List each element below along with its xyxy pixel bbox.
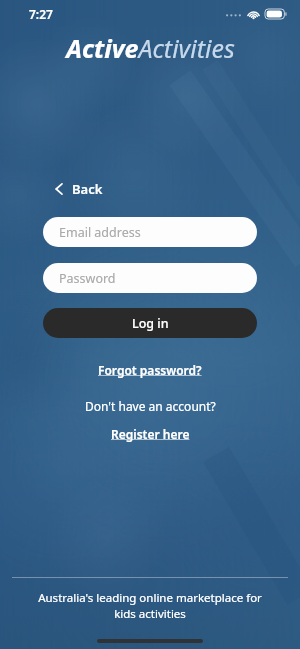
staticText: Back xyxy=(72,180,103,198)
button[interactable]: Password xyxy=(43,263,257,293)
button[interactable]: Forgot password? xyxy=(92,359,208,381)
button[interactable]: Log in xyxy=(43,308,257,338)
other: Battery xyxy=(265,9,287,19)
staticText: Password xyxy=(59,270,116,287)
button[interactable]: Email address xyxy=(43,217,257,247)
staticText: Australia's leading online marketplace f… xyxy=(26,590,274,621)
staticText: Email address xyxy=(59,224,141,241)
staticText: Don't have an account? xyxy=(85,398,216,414)
staticText: Log in xyxy=(132,315,169,332)
other: Wi-Fi xyxy=(247,9,260,19)
button[interactable]: Register here xyxy=(105,423,196,445)
staticText: ActiveActivities xyxy=(66,31,235,65)
button[interactable]: Back xyxy=(50,176,107,202)
other: Cellular signal xyxy=(225,11,242,17)
staticText: 7:27 xyxy=(29,6,53,22)
